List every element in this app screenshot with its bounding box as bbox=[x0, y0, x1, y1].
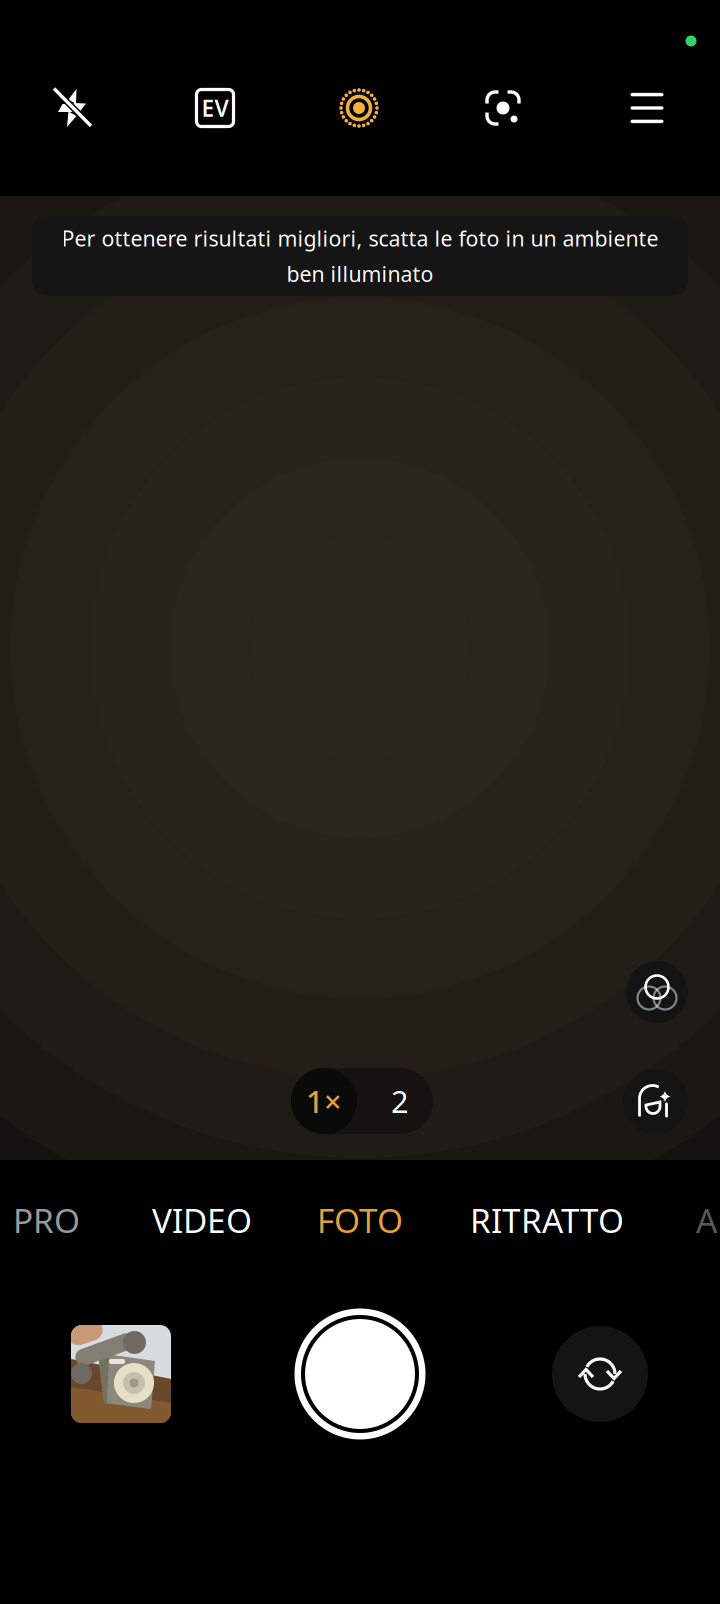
button[interactable]: A bbox=[696, 1198, 717, 1242]
staticText: VIDEO bbox=[152, 1198, 252, 1242]
button[interactable]: Last photo bbox=[71, 1325, 171, 1423]
staticText: PRO bbox=[13, 1198, 80, 1242]
button[interactable]: FOTO bbox=[317, 1198, 403, 1242]
button[interactable]: Exposure compensation bbox=[193, 86, 237, 130]
button[interactable]: 1× bbox=[291, 1068, 357, 1134]
staticText: RITRATTO bbox=[470, 1198, 624, 1242]
staticText: EV bbox=[201, 93, 228, 123]
button[interactable]: Take photo bbox=[294, 1308, 425, 1439]
staticText: 1× bbox=[306, 1081, 342, 1121]
button[interactable]: Flash off bbox=[51, 86, 95, 130]
button[interactable]: Night mode bbox=[336, 85, 382, 131]
button[interactable]: Switch camera bbox=[552, 1326, 648, 1422]
button[interactable]: More settings bbox=[625, 86, 669, 130]
button[interactable]: RITRATTO bbox=[470, 1198, 624, 1242]
staticText: 2 bbox=[391, 1081, 409, 1121]
staticText: ben illuminato bbox=[286, 259, 433, 288]
staticText: Per ottenere risultati migliori, scatta … bbox=[61, 224, 658, 252]
staticText: FOTO bbox=[317, 1198, 403, 1242]
button[interactable]: Beauty mode bbox=[623, 1069, 688, 1134]
button[interactable]: VIDEO bbox=[152, 1198, 252, 1242]
button[interactable]: AI scene detection bbox=[481, 86, 525, 130]
button[interactable]: Colour filters bbox=[626, 961, 688, 1023]
button[interactable]: 2 bbox=[367, 1068, 433, 1134]
button[interactable]: PRO bbox=[13, 1198, 80, 1242]
staticText: A bbox=[696, 1198, 717, 1242]
